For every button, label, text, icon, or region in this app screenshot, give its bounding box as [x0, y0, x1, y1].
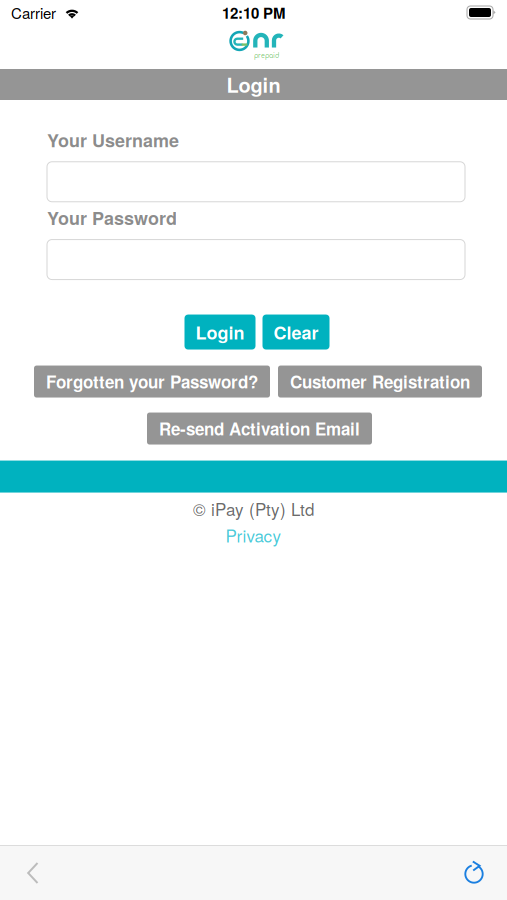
staticText: Forgotten your Password?: [46, 369, 258, 394]
staticText: 12:10 PM: [222, 2, 285, 23]
button[interactable]: Privacy: [225, 523, 281, 547]
button[interactable]: Re-send Activation Email: [147, 413, 372, 445]
button[interactable]: [47, 240, 465, 280]
staticText: Re-send Activation Email: [159, 416, 360, 441]
staticText: Your Password: [47, 205, 177, 231]
staticText: © iPay (Pty) Ltd: [193, 497, 314, 521]
button[interactable]: [47, 162, 465, 202]
staticText: Clear: [273, 319, 318, 345]
button[interactable]: Customer Registration: [278, 366, 482, 398]
staticText: Carrier: [11, 2, 56, 23]
button[interactable]: Login: [184, 315, 255, 350]
staticText: Login: [226, 70, 280, 99]
button[interactable]: Reload: [441, 846, 507, 900]
button[interactable]: Back: [0, 846, 66, 900]
staticText: Login: [195, 319, 244, 345]
staticText: Your Username: [47, 127, 179, 153]
staticText: Customer Registration: [290, 369, 470, 394]
staticText: prepaid: [254, 53, 279, 59]
button[interactable]: Clear: [262, 315, 329, 350]
staticText: Privacy: [225, 523, 281, 547]
button[interactable]: Forgotten your Password?: [34, 366, 270, 398]
